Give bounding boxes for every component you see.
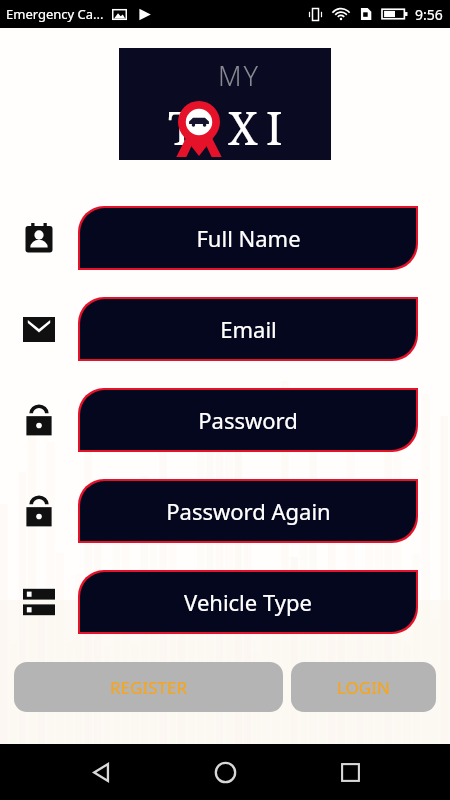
other: Email [23,317,55,342]
staticText: Password [198,405,298,435]
other: Full name [24,223,54,253]
staticText: 9:56 [415,5,443,24]
button[interactable]: Recent apps [326,748,374,796]
button[interactable]: Password Again [80,481,416,541]
button[interactable]: LOGIN [291,662,436,712]
button[interactable]: REGISTER [14,662,283,712]
button[interactable]: Home [201,748,249,796]
staticText: Emergency Ca... [6,5,104,23]
button[interactable]: Full Name [80,208,416,268]
staticText: MY [218,57,260,94]
staticText: Password Again [166,496,331,526]
other: Password [25,405,53,436]
staticText: REGISTER [110,676,187,699]
button[interactable]: Email [80,299,416,359]
staticText: Vehicle Type [184,587,312,617]
staticText: LOGIN [337,676,390,699]
staticText: I [266,97,283,158]
staticText: T [168,97,196,158]
button[interactable]: Password [80,390,416,450]
other: Password [25,496,53,527]
other: Vehicle type [23,587,55,617]
button[interactable]: Vehicle Type [80,572,416,632]
staticText: Full Name [196,223,301,253]
button[interactable]: Back [77,748,125,796]
staticText: Email [220,314,277,344]
staticText: X [228,97,258,158]
